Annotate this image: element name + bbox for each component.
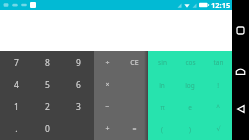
button[interactable]: log xyxy=(176,74,204,96)
button[interactable]: − xyxy=(94,96,121,118)
button[interactable]: Home xyxy=(232,62,249,79)
staticText: 3 xyxy=(76,101,81,113)
button[interactable]: 2 xyxy=(32,96,63,118)
button[interactable]: × xyxy=(94,74,121,96)
button[interactable]: + xyxy=(94,118,121,140)
button[interactable]: . xyxy=(0,118,32,140)
staticText: log xyxy=(185,81,195,90)
staticText: 2 xyxy=(45,101,50,113)
staticText: 7 xyxy=(14,57,19,69)
button[interactable]: 0 xyxy=(32,118,63,140)
button[interactable] xyxy=(121,74,148,96)
button[interactable] xyxy=(121,96,148,118)
staticText: − xyxy=(105,102,110,112)
staticText: 4 xyxy=(14,79,19,91)
staticText: sin xyxy=(158,58,167,67)
button[interactable]: π xyxy=(148,96,176,118)
staticText: = xyxy=(132,124,137,134)
button[interactable]: ÷ xyxy=(94,51,121,74)
button[interactable]: 9 xyxy=(63,51,94,74)
button[interactable]: 3 xyxy=(63,96,94,118)
staticText: e xyxy=(188,103,192,112)
button[interactable]: = xyxy=(121,118,148,140)
button[interactable]: 1 xyxy=(0,96,32,118)
button[interactable]: CE xyxy=(121,51,148,74)
button[interactable]: 8 xyxy=(32,51,63,74)
staticText: π xyxy=(160,103,165,112)
staticText: ÷ xyxy=(105,58,110,68)
staticText: tan xyxy=(213,58,224,67)
staticText: 0 xyxy=(45,123,50,135)
staticText: ln xyxy=(159,81,165,90)
staticText: . xyxy=(15,123,18,135)
button[interactable]: 7 xyxy=(0,51,32,74)
button[interactable]: 4 xyxy=(0,74,32,96)
staticText: cos xyxy=(185,58,196,67)
staticText: CE xyxy=(130,58,139,68)
staticText: ) xyxy=(189,125,191,134)
staticText: 8 xyxy=(45,57,50,69)
button[interactable]: tan xyxy=(204,51,232,74)
button[interactable]: ln xyxy=(148,74,176,96)
staticText: 9 xyxy=(76,57,81,69)
button[interactable]: 5 xyxy=(32,74,63,96)
staticText: ( xyxy=(161,125,163,134)
button[interactable]: sin xyxy=(148,51,176,74)
staticText: + xyxy=(105,124,110,134)
staticText: 6 xyxy=(76,79,81,91)
button[interactable]: e xyxy=(176,96,204,118)
staticText: ! xyxy=(217,81,219,90)
button[interactable]: Recent apps xyxy=(232,22,249,39)
staticText: ^ xyxy=(216,103,220,112)
staticText: 12:15 xyxy=(211,0,231,10)
button[interactable]: Back xyxy=(232,100,249,117)
staticText: 5 xyxy=(45,79,50,91)
button[interactable]: 6 xyxy=(63,74,94,96)
staticText: 1 xyxy=(14,101,19,113)
button[interactable]: cos xyxy=(176,51,204,74)
staticText: √ xyxy=(216,125,221,133)
staticText: × xyxy=(105,80,110,90)
